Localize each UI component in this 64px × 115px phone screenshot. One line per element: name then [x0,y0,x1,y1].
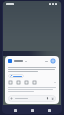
button[interactable]: Add [8,95,56,102]
button[interactable]: More options [45,61,48,62]
button[interactable] [8,74,24,78]
button[interactable]: More options [8,58,56,64]
button[interactable]: Source 3 [24,80,29,85]
other: Voice input [46,97,49,100]
button[interactable]: Home [28,107,36,113]
button[interactable]: Source 2 [16,80,21,85]
button[interactable]: Source 1 [8,80,13,85]
button[interactable]: Send [51,97,54,100]
button[interactable]: Source 4 [32,80,37,85]
other: Add [10,97,13,100]
button[interactable]: Back [45,107,53,113]
button[interactable]: Recents [11,107,19,113]
button[interactable]: Account [50,58,56,64]
